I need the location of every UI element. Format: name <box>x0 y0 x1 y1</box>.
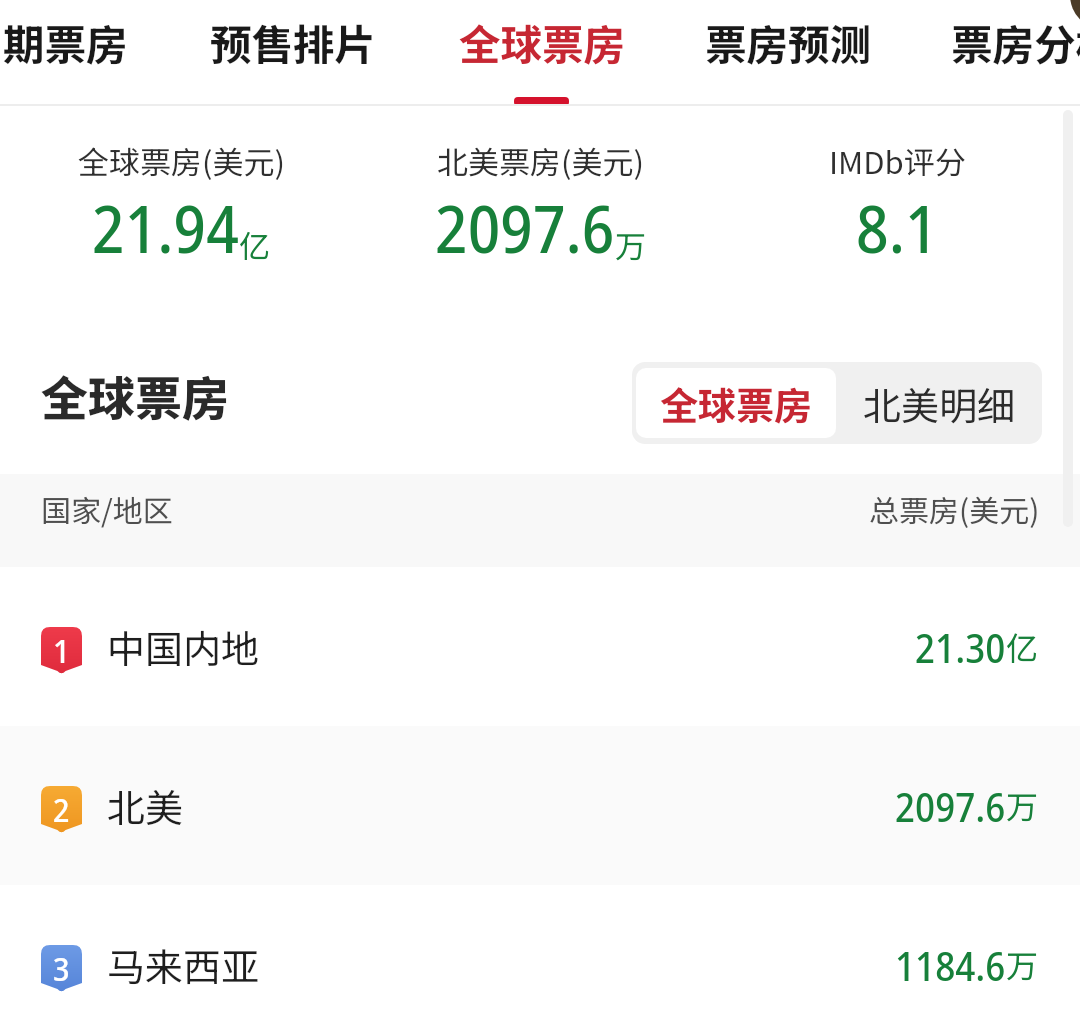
button[interactable]: 全球票房 <box>432 0 652 104</box>
staticText: 总票房(美元) <box>869 487 1040 530</box>
staticText: 亿 <box>1006 623 1039 669</box>
staticText: 全球票房 <box>459 12 626 72</box>
staticText: IMDb评分 <box>829 138 966 183</box>
button[interactable]: 北美明细 <box>836 362 1042 444</box>
button[interactable]: 3 <box>0 885 1080 1023</box>
button[interactable]: 期票房 <box>0 0 155 104</box>
staticText: 1 <box>53 628 70 673</box>
staticText: 21.30 <box>915 620 1006 674</box>
button[interactable]: 2 <box>0 726 1080 885</box>
button[interactable]: 1 <box>0 567 1080 726</box>
staticText: 万 <box>1006 782 1039 828</box>
staticText: 预售排片 <box>210 12 377 72</box>
staticText: 期票房 <box>3 12 128 72</box>
staticText: 3 <box>53 946 70 991</box>
staticText: 票房分析 <box>951 12 1080 72</box>
staticText: 全球票房 <box>41 361 229 429</box>
staticText: 北美票房(美元) <box>437 138 644 183</box>
staticText: 亿 <box>239 222 270 267</box>
staticText: 2097.6 <box>435 184 615 273</box>
staticText: 马来西亚 <box>107 937 260 992</box>
staticText: 全球票房(美元) <box>78 138 285 183</box>
staticText: 21.94 <box>92 184 239 273</box>
staticText: 万 <box>1006 941 1039 987</box>
staticText: 票房预测 <box>705 12 872 72</box>
staticText: 北美 <box>107 778 184 833</box>
staticText: 万 <box>615 222 646 267</box>
staticText: 北美明细 <box>863 376 1016 431</box>
button[interactable]: 全球票房 <box>41 361 229 429</box>
staticText: 2097.6 <box>895 779 1006 833</box>
staticText: 国家/地区 <box>41 487 173 530</box>
staticText: 8.1 <box>856 184 938 273</box>
staticText: 全球票房 <box>660 376 813 431</box>
button[interactable]: 票房分析 <box>924 0 1080 104</box>
button[interactable]: 票房预测 <box>678 0 898 104</box>
staticText: 1184.6 <box>895 938 1006 992</box>
button[interactable]: 预售排片 <box>183 0 403 104</box>
staticText: 中国内地 <box>107 619 260 674</box>
button[interactable]: 全球票房 <box>636 368 836 438</box>
staticText: 2 <box>53 787 70 832</box>
